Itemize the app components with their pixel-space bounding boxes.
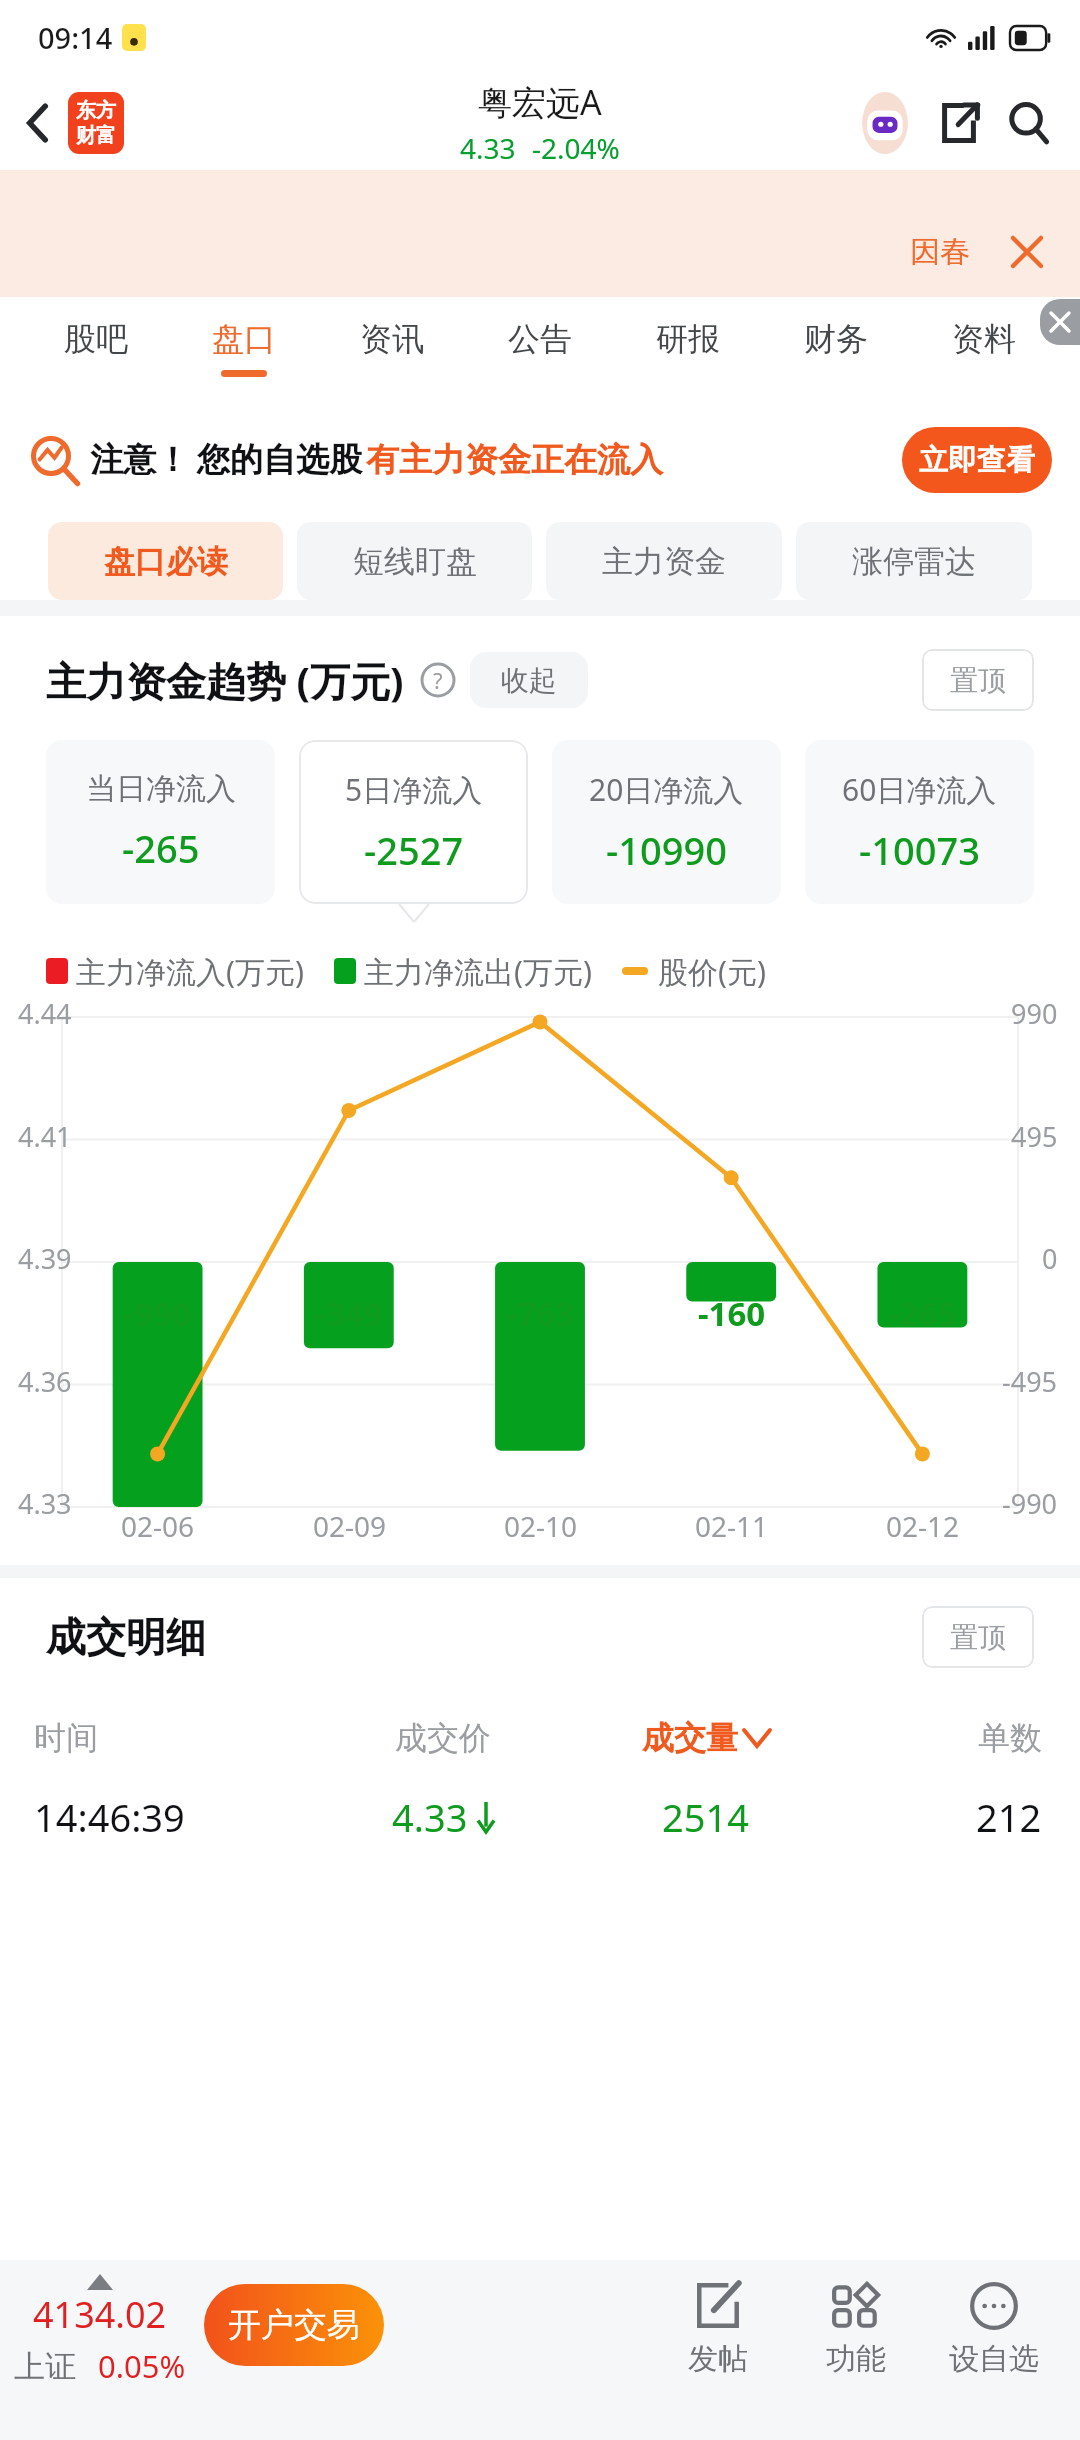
staticText: 成交量 bbox=[642, 1718, 738, 1758]
staticText: 主力资金 bbox=[602, 542, 726, 581]
staticText: 成交价 bbox=[395, 1718, 491, 1758]
staticText: -2527 bbox=[364, 824, 464, 876]
staticText: -990 bbox=[1002, 1485, 1058, 1522]
staticText: ? bbox=[433, 665, 443, 695]
button[interactable]: 股吧 bbox=[22, 297, 170, 397]
staticText: 功能 bbox=[826, 2340, 886, 2378]
staticText: 置顶 bbox=[950, 663, 1006, 698]
button[interactable]: 收起 bbox=[470, 652, 588, 708]
staticText: -495 bbox=[1002, 1363, 1058, 1400]
button[interactable]: 4134.02 bbox=[0, 2274, 200, 2387]
staticText: 4.33 bbox=[18, 1485, 72, 1522]
staticText: -10990 bbox=[606, 824, 727, 876]
staticText: -10073 bbox=[859, 824, 980, 876]
staticText: -763 bbox=[507, 1291, 575, 1336]
button[interactable]: 因春 bbox=[910, 233, 970, 271]
staticText: 财富 bbox=[76, 123, 116, 148]
button[interactable]: Help bbox=[418, 660, 458, 700]
staticText: 资讯 bbox=[360, 319, 424, 359]
staticText: 股价(元) bbox=[658, 951, 766, 992]
staticText: 02-11 bbox=[695, 1507, 769, 1545]
button[interactable]: 公告 bbox=[466, 297, 614, 397]
staticText: 主力净流出(万元) bbox=[364, 951, 592, 992]
button[interactable]: 东方 bbox=[68, 92, 124, 154]
staticText: 4.33 bbox=[392, 1791, 468, 1843]
staticText: 09:14 bbox=[38, 18, 113, 57]
staticText: 2514 bbox=[662, 1791, 749, 1843]
staticText: 02-12 bbox=[886, 1507, 960, 1545]
staticText: 4134.02 bbox=[33, 2290, 167, 2339]
staticText: 上证 bbox=[14, 2347, 76, 2386]
button[interactable]: Dismiss bbox=[1040, 299, 1080, 345]
button[interactable]: 涨停雷达 bbox=[796, 522, 1032, 600]
staticText: 粤宏远A bbox=[478, 79, 602, 125]
staticText: 当日净流入 bbox=[86, 770, 236, 808]
button[interactable]: 注意！ bbox=[0, 397, 1080, 522]
staticText: 公告 bbox=[508, 319, 572, 359]
staticText: 4.39 bbox=[18, 1240, 72, 1277]
button[interactable]: 研报 bbox=[614, 297, 762, 397]
staticText: 单数 bbox=[978, 1718, 1042, 1758]
staticText: -349 bbox=[316, 1291, 384, 1336]
button[interactable]: 20日净流入 bbox=[552, 740, 781, 904]
staticText: 收起 bbox=[501, 663, 557, 698]
staticText: 成交明细 bbox=[46, 1612, 206, 1662]
button[interactable]: 当日净流入 bbox=[46, 740, 275, 904]
button[interactable]: Close bbox=[1004, 229, 1050, 275]
button[interactable]: 功能 bbox=[800, 2280, 912, 2378]
staticText: 发帖 bbox=[688, 2340, 748, 2378]
staticText: 立即查看 bbox=[919, 442, 1035, 479]
button[interactable]: 主力资金 bbox=[546, 522, 782, 600]
staticText: 置顶 bbox=[950, 1620, 1006, 1655]
staticText: -265 bbox=[889, 1291, 957, 1336]
staticText: 盘口 bbox=[212, 319, 276, 359]
staticText: 财务 bbox=[804, 319, 868, 359]
staticText: -2.04% bbox=[532, 129, 620, 167]
staticText: -160 bbox=[698, 1291, 766, 1336]
button[interactable]: Search bbox=[1000, 94, 1058, 152]
staticText: 14:46:39 bbox=[34, 1791, 185, 1843]
button[interactable]: 成交量 bbox=[642, 1718, 770, 1758]
button[interactable]: 盘口必读 bbox=[48, 522, 283, 600]
button[interactable]: 置顶 bbox=[922, 1606, 1034, 1668]
staticText: 4.41 bbox=[18, 1118, 72, 1155]
staticText: 02-09 bbox=[313, 1507, 387, 1545]
button[interactable]: 发帖 bbox=[662, 2280, 774, 2378]
staticText: 5日净流入 bbox=[345, 769, 483, 810]
button[interactable]: 短线盯盘 bbox=[297, 522, 532, 600]
staticText: 02-10 bbox=[504, 1507, 578, 1545]
button[interactable]: Assistant bbox=[854, 92, 916, 154]
staticText: 4.33 bbox=[460, 129, 516, 167]
staticText: 495 bbox=[1011, 1118, 1058, 1155]
button[interactable]: 60日净流入 bbox=[805, 740, 1034, 904]
staticText: 60日净流入 bbox=[842, 769, 997, 810]
button[interactable]: 资讯 bbox=[318, 297, 466, 397]
staticText: 主力净流入(万元) bbox=[76, 951, 304, 992]
staticText: 4.44 bbox=[18, 995, 72, 1032]
button[interactable]: 立即查看 bbox=[902, 427, 1052, 493]
staticText: -990 bbox=[124, 1291, 192, 1336]
button[interactable]: 财务 bbox=[762, 297, 910, 397]
staticText: 开户交易 bbox=[228, 2304, 360, 2346]
button[interactable]: 5日净流入 bbox=[299, 740, 528, 904]
staticText: 990 bbox=[1011, 995, 1058, 1032]
button[interactable]: 盘口 bbox=[170, 297, 318, 397]
staticText: 4.36 bbox=[18, 1363, 72, 1400]
staticText: 20日净流入 bbox=[589, 769, 744, 810]
staticText: 涨停雷达 bbox=[852, 542, 976, 581]
button[interactable]: Back bbox=[12, 97, 64, 149]
button[interactable]: 资料 bbox=[910, 297, 1058, 397]
staticText: 东方 bbox=[76, 98, 116, 123]
staticText: 资料 bbox=[952, 319, 1016, 359]
button[interactable]: 开户交易 bbox=[204, 2284, 384, 2366]
button[interactable]: 设自选 bbox=[938, 2280, 1050, 2378]
staticText: 212 bbox=[976, 1791, 1042, 1843]
staticText: 短线盯盘 bbox=[353, 542, 477, 581]
button[interactable]: 置顶 bbox=[922, 649, 1034, 711]
button[interactable]: Share bbox=[930, 94, 988, 152]
staticText: 有主力资金正在流入 bbox=[366, 439, 663, 481]
staticText: 您的自选股 bbox=[197, 439, 362, 481]
staticText: 股吧 bbox=[64, 319, 128, 359]
staticText: 注意！ bbox=[90, 439, 189, 481]
staticText: 0 bbox=[1042, 1240, 1058, 1277]
